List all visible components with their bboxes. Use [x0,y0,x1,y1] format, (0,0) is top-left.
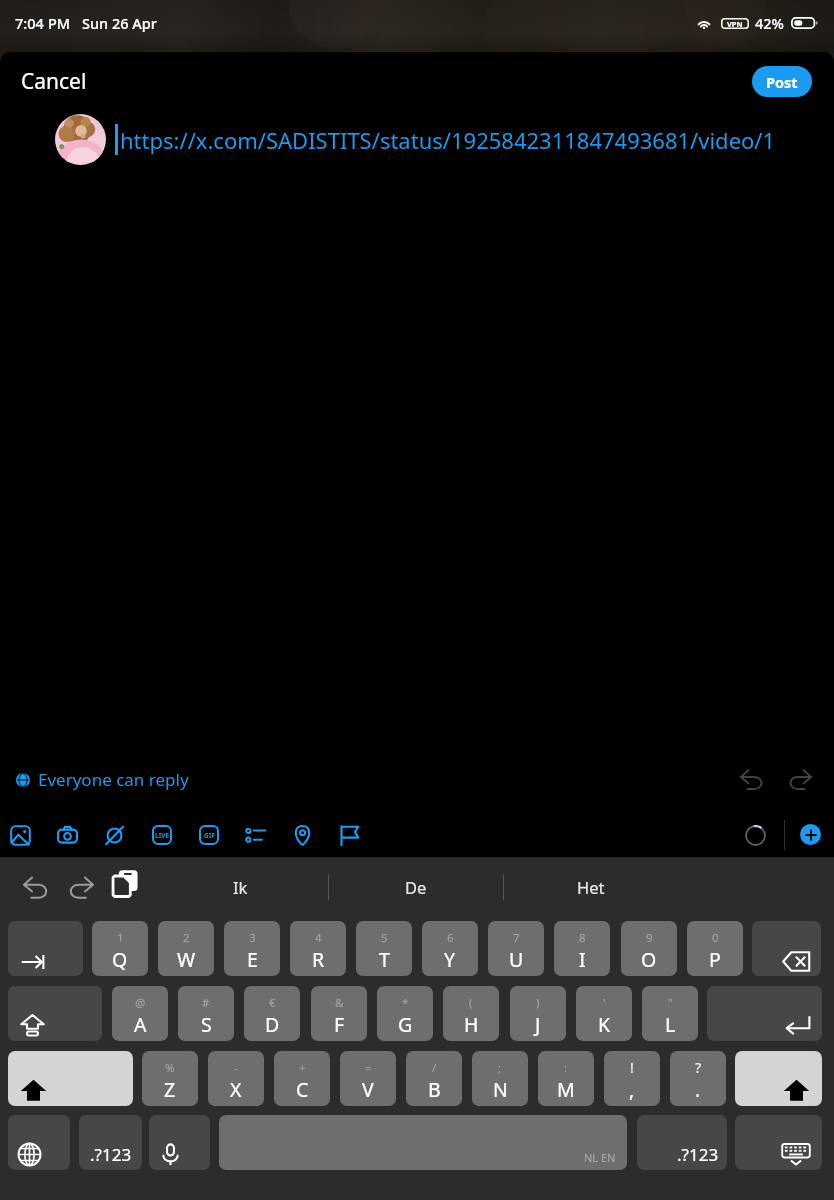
button[interactable]: Camera [44,814,91,856]
button[interactable]: Tab [8,921,83,976]
button[interactable]: : [538,1051,594,1106]
button[interactable]: Enter [707,986,822,1041]
button[interactable]: Add another post [800,824,821,845]
button[interactable] [55,114,106,165]
button[interactable]: Poll [232,814,279,856]
button[interactable]: 4 [290,921,346,976]
button[interactable]: ' [576,986,632,1041]
staticText: F [334,1011,345,1038]
button[interactable]: € [244,986,300,1041]
staticText: 8 [579,930,586,946]
staticText: Ik [233,876,248,898]
button[interactable]: ) [510,986,566,1041]
button[interactable]: Space [219,1115,627,1170]
button[interactable]: Hide keyboard [735,1115,822,1170]
staticText: , [629,1076,635,1103]
staticText: T [379,946,390,973]
staticText: 3 [249,930,256,946]
button[interactable]: Shift [735,1051,822,1106]
button[interactable]: + [274,1051,330,1106]
button[interactable]: 8 [554,921,610,976]
staticText: I [579,946,586,973]
button[interactable]: Cancel [8,59,100,104]
button[interactable]: Voice input [149,1115,210,1170]
staticText: € [269,995,276,1011]
button[interactable]: Post [752,66,812,97]
button[interactable]: 0 [687,921,743,976]
staticText: Post [766,72,798,92]
button[interactable]: De [329,857,503,917]
button[interactable]: * [377,986,433,1041]
button[interactable]: @ [112,986,168,1041]
button[interactable]: .?123 [637,1115,727,1170]
staticText: * [402,995,409,1011]
staticText: X [230,1076,242,1103]
button[interactable]: Shift [8,1051,133,1106]
button[interactable]: Community note [326,814,373,856]
button[interactable]: Ik [152,857,328,917]
button[interactable]: .?123 [79,1115,142,1170]
staticText: Everyone can reply [38,768,189,791]
staticText: : [564,1060,568,1076]
button[interactable]: - [208,1051,264,1106]
button[interactable]: Everyone can reply [10,764,195,795]
staticText: GIF [204,831,215,840]
button[interactable]: Location [279,814,326,856]
button[interactable]: / [406,1051,462,1106]
button[interactable]: Backspace [752,921,821,976]
button[interactable]: 5 [356,921,412,976]
button[interactable]: GIF [185,814,232,856]
staticText: @ [135,995,146,1011]
staticText: 6 [447,930,454,946]
button[interactable]: " [642,986,698,1041]
staticText: Q [112,946,128,973]
button[interactable]: 6 [422,921,478,976]
staticText: ( [469,995,473,1011]
button[interactable]: 2 [158,921,214,976]
button[interactable]: ; [472,1051,528,1106]
button[interactable]: ! [604,1051,660,1106]
staticText: 0 [712,930,719,946]
button[interactable]: Edit image [91,814,138,856]
staticText: K [598,1011,611,1038]
button[interactable]: ( [443,986,499,1041]
staticText: LIVE [155,831,170,840]
staticText: U [509,946,524,973]
button[interactable]: Undo [14,865,58,909]
button[interactable]: # [178,986,234,1041]
button[interactable]: Live [138,814,185,856]
staticText: = [365,1060,372,1076]
button[interactable]: % [142,1051,198,1106]
staticText: # [202,995,210,1011]
button[interactable]: Redo [59,865,103,909]
staticText: De [405,876,427,898]
button[interactable]: Caps lock [8,986,102,1041]
staticText: V [362,1076,374,1103]
staticText: D [265,1011,280,1038]
button[interactable]: 9 [621,921,677,976]
staticText: 7:04 [15,13,44,33]
button[interactable]: Redo [780,759,820,799]
button[interactable]: ? [670,1051,726,1106]
button[interactable]: 7 [488,921,544,976]
button[interactable]: = [340,1051,396,1106]
button[interactable]: & [311,986,367,1041]
staticText: M [557,1076,575,1103]
button[interactable]: Change language [8,1115,70,1170]
staticText: ; [498,1060,502,1076]
button[interactable]: Character count [739,819,771,851]
staticText: . [695,1076,701,1103]
button[interactable]: Undo [732,759,772,799]
staticText: .?123 [677,1143,719,1166]
button[interactable]: Het [504,857,678,917]
staticText: B [428,1076,441,1103]
button[interactable]: 1 [92,921,148,976]
staticText: .?123 [90,1143,132,1166]
button[interactable]: Add photo [0,814,44,856]
staticText: A [134,1011,147,1038]
button[interactable]: Clipboard [104,865,148,909]
button[interactable]: 3 [224,921,280,976]
staticText: NL EN [584,1150,616,1165]
staticText: " [668,995,673,1011]
staticText: 9 [646,930,653,946]
